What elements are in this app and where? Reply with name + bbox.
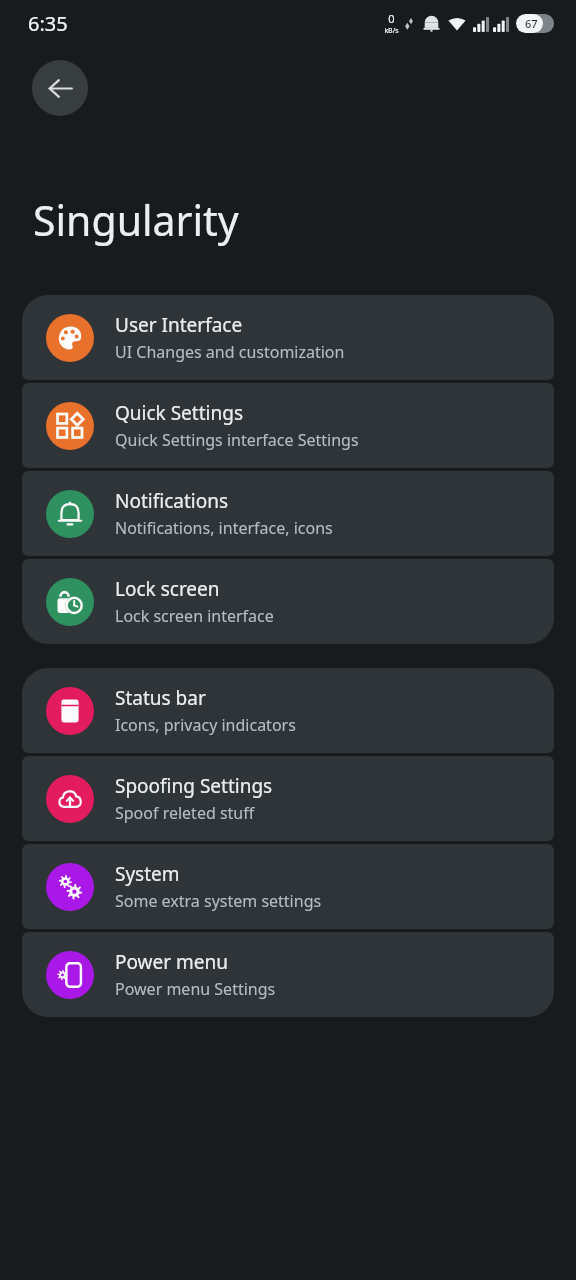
staticText: Singularity (33, 192, 239, 248)
button[interactable]: Status bar (22, 668, 554, 753)
staticText: Lock screen (115, 576, 220, 602)
staticText: Notifications, interface, icons (115, 517, 333, 539)
staticText: Spoof releted stuff (115, 802, 255, 824)
staticText: System (115, 861, 180, 887)
button[interactable]: Lock screen (22, 559, 554, 644)
staticText: kB/s (384, 26, 399, 36)
staticText: User Interface (115, 312, 243, 338)
staticText: 6:35 (28, 10, 68, 37)
staticText: Power menu Settings (115, 978, 276, 1000)
button[interactable]: User Interface (22, 295, 554, 380)
staticText: 67 (525, 16, 538, 31)
button[interactable]: Back (32, 60, 88, 116)
staticText: Some extra system settings (115, 890, 322, 912)
staticText: Quick Settings (115, 400, 243, 426)
button[interactable]: Quick Settings (22, 383, 554, 468)
button[interactable]: Power menu (22, 932, 554, 1017)
staticText: Quick Settings interface Settings (115, 429, 359, 451)
staticText: Icons, privacy indicators (115, 714, 296, 736)
staticText: Lock screen interface (115, 605, 274, 627)
button[interactable]: Spoofing Settings (22, 756, 554, 841)
staticText: Status bar (115, 685, 206, 711)
staticText: 0 (388, 11, 395, 26)
staticText: Notifications (115, 488, 229, 514)
button[interactable]: Notifications (22, 471, 554, 556)
staticText: Spoofing Settings (115, 773, 273, 799)
button[interactable]: System (22, 844, 554, 929)
staticText: UI Changes and customization (115, 341, 345, 363)
staticText: Power menu (115, 949, 229, 975)
